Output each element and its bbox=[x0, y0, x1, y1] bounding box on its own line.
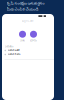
staticText: ఎంపిక ఒకటి bbox=[8, 49, 20, 52]
staticText: మీరు ఎంపిక చేయండి bbox=[6, 7, 38, 12]
staticText: భూమి bbox=[30, 39, 37, 42]
staticText: AgriCare bbox=[22, 19, 34, 23]
staticText: ఎంపిక రెండు bbox=[8, 53, 21, 56]
staticText: కృషి సంరక్షణ అనువర్తనం bbox=[6, 1, 44, 6]
staticText: ఎంపికలు bbox=[4, 45, 13, 48]
staticText: పంట bbox=[20, 39, 25, 42]
